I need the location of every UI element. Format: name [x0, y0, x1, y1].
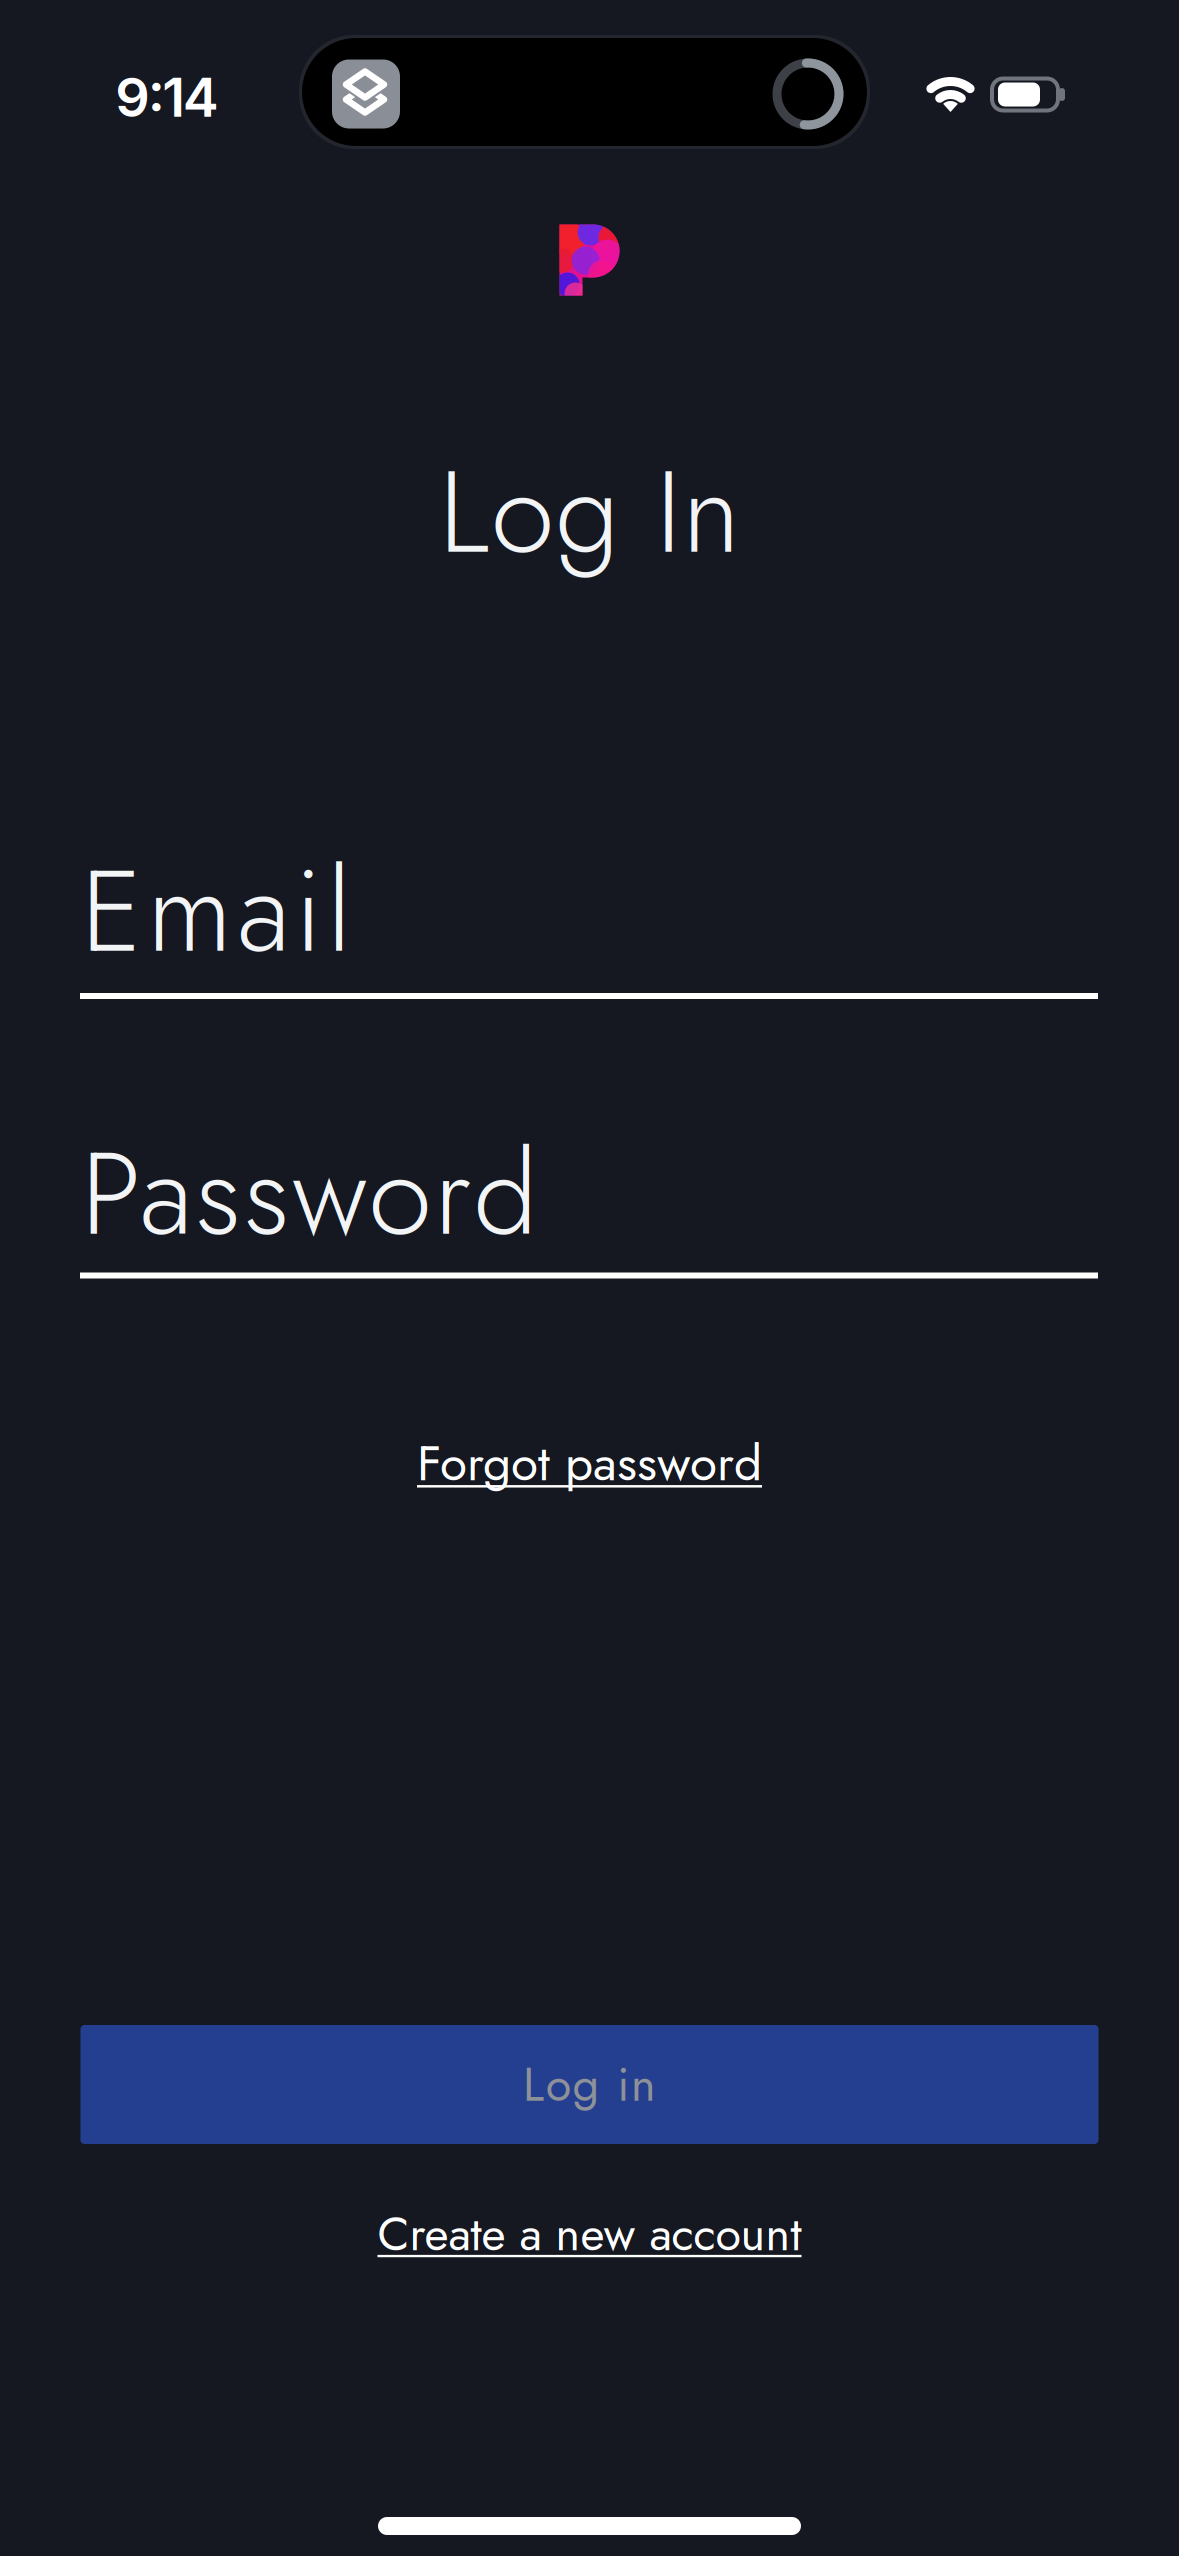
button[interactable]: Email	[0, 820, 1179, 1000]
staticText: Forgot password	[417, 1428, 762, 1498]
staticText: 9:14	[115, 64, 219, 130]
staticText: Log in	[523, 2052, 656, 2117]
staticText: Password	[81, 1113, 537, 1275]
button[interactable]: Log in	[80, 2025, 1098, 2144]
staticText: Create a new account	[377, 2201, 801, 2267]
staticText: Email	[81, 830, 351, 992]
button[interactable]: Forgot password	[417, 1428, 762, 1498]
button[interactable]: Create a new account	[377, 2201, 801, 2267]
staticText: Log In	[439, 431, 740, 593]
button[interactable]: Password	[0, 1103, 1179, 1283]
